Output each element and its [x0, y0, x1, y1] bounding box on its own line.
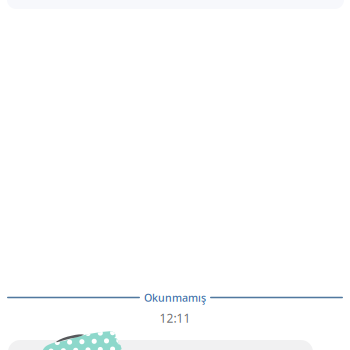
- staticText: Okunmamış: [144, 290, 206, 305]
- staticText: 12:11: [159, 310, 190, 326]
